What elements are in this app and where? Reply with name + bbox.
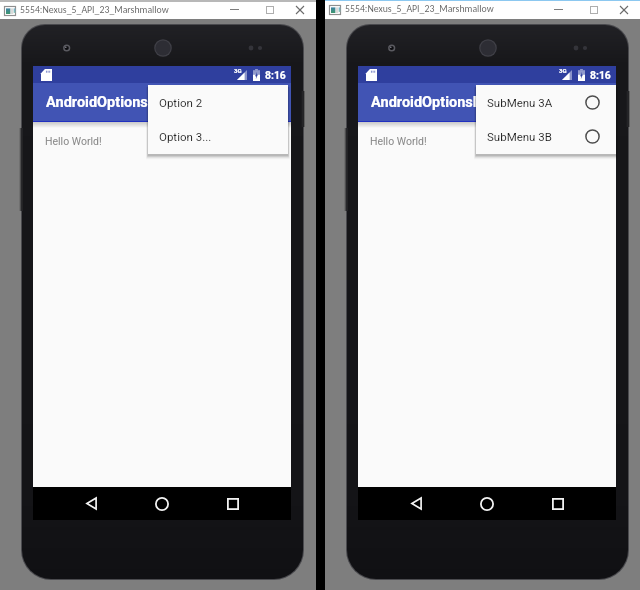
button[interactable]: SubMenu 3B [476, 119, 616, 154]
staticText: Option 3... [159, 130, 212, 143]
staticText: SubMenu 3A [487, 96, 553, 109]
staticText: Hello World! [370, 135, 427, 147]
button[interactable]: Close [611, 1, 636, 18]
staticText: Hello World! [45, 135, 102, 147]
button[interactable]: Minimize [217, 1, 252, 18]
staticText: AndroidOptionsMenu [46, 94, 185, 111]
button[interactable]: Option 3... [148, 119, 288, 154]
staticText: 8:16 [590, 69, 611, 81]
staticText: 8:16 [265, 69, 286, 81]
button[interactable]: Maximize [252, 1, 287, 18]
staticText: SubMenu 3B [487, 130, 552, 143]
button[interactable]: Recents [544, 487, 572, 520]
button[interactable]: Option 2 [148, 85, 288, 119]
staticText: 3G [559, 67, 567, 74]
button[interactable]: Home [473, 487, 501, 520]
button[interactable]: Recents [219, 487, 247, 520]
button[interactable]: Home [148, 487, 176, 520]
staticText: 5554:Nexus_5_API_23_Marshmallow [20, 4, 169, 16]
button[interactable]: Minimize [541, 1, 576, 18]
button[interactable]: Back [77, 487, 105, 520]
button[interactable]: Back [402, 487, 430, 520]
staticText: 5554:Nexus_5_API_23_Marshmallow [345, 3, 494, 15]
button[interactable]: Maximize [576, 1, 611, 18]
staticText: AndroidOptionsMenu [371, 94, 510, 111]
button[interactable]: SubMenu 3A [476, 85, 616, 119]
staticText: 3G [234, 67, 242, 74]
button[interactable]: Close [287, 1, 312, 18]
staticText: Option 2 [159, 96, 203, 109]
